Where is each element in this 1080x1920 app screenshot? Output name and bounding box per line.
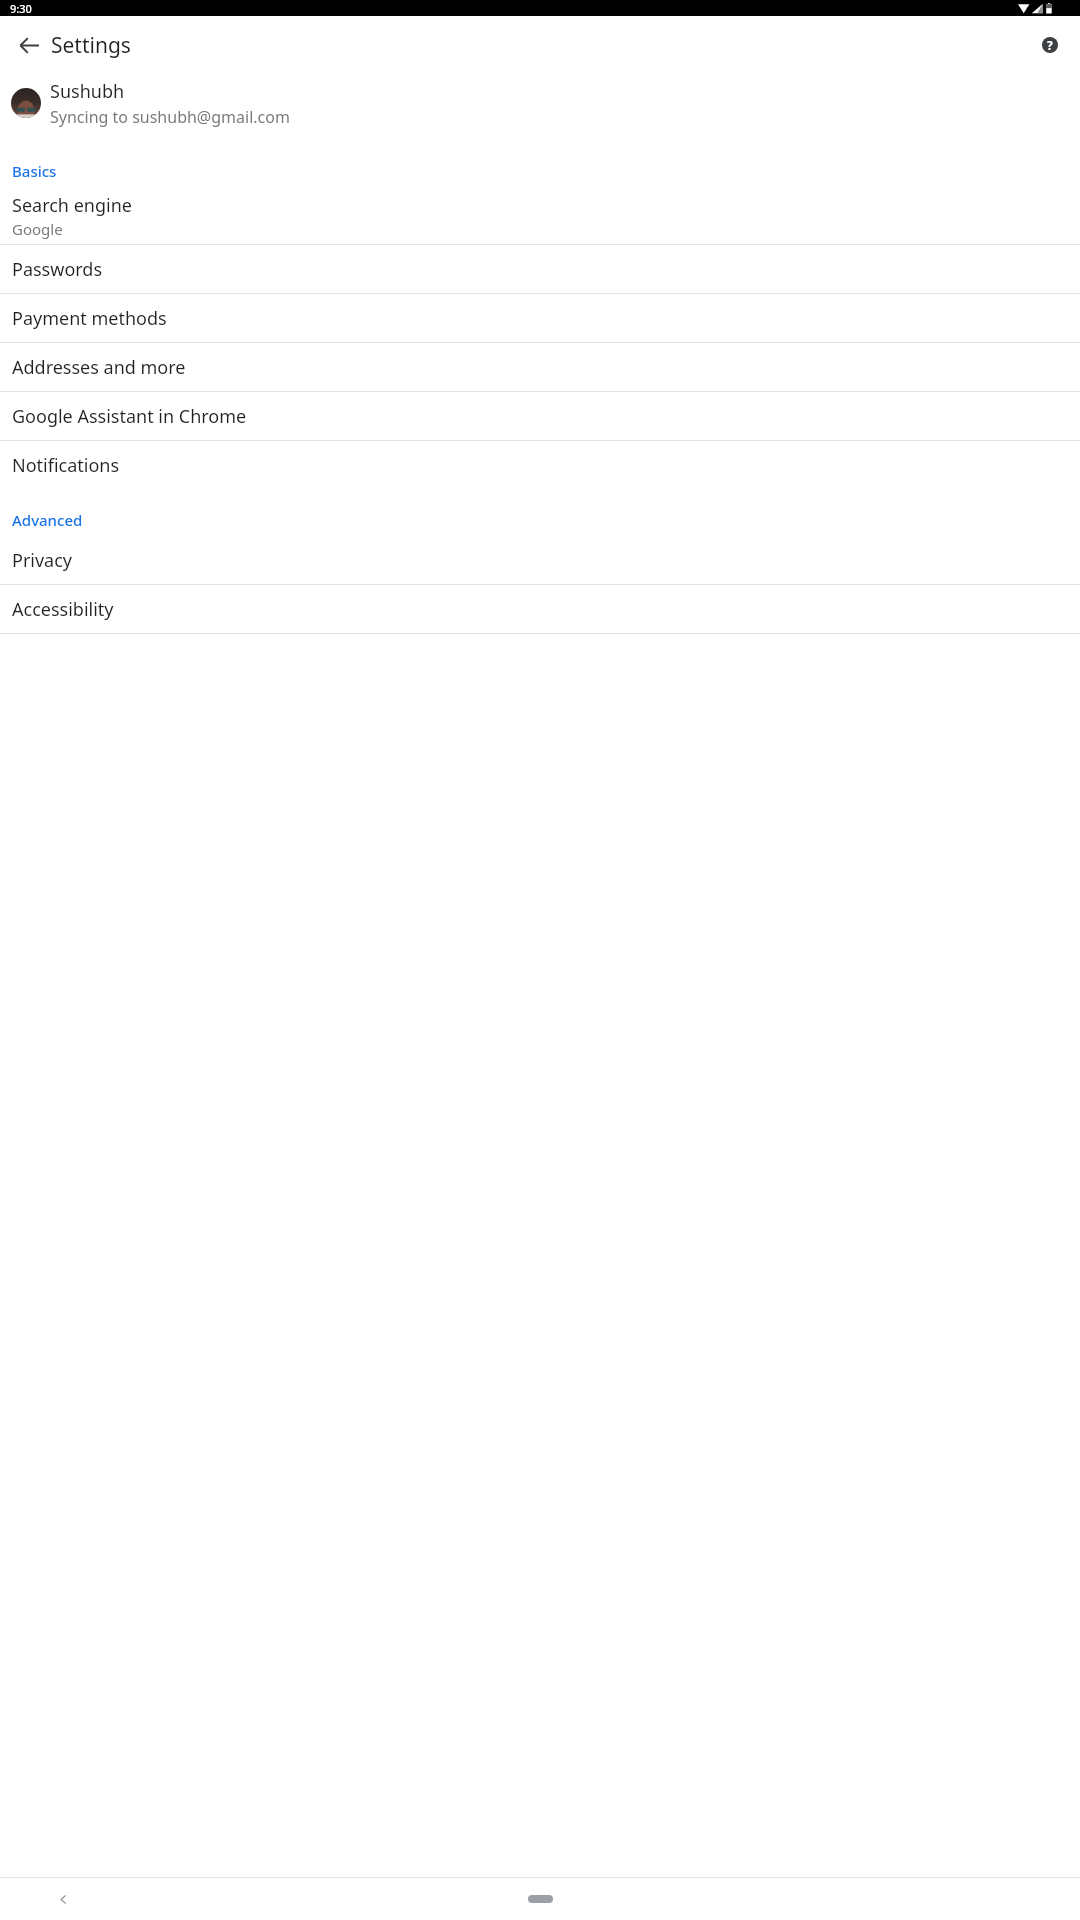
button[interactable]: Help [1029,24,1071,66]
button[interactable]: Sushubh [0,74,1080,132]
staticText: Advanced [12,510,83,530]
staticText: Google [12,219,63,239]
staticText: Payment methods [12,306,167,331]
button[interactable]: Payment methods [0,294,1080,342]
button[interactable]: Accessibility [0,585,1080,633]
button[interactable]: Notifications [0,441,1080,489]
staticText: Notifications [12,453,120,478]
staticText: Syncing to sushubh@gmail.com [50,106,290,128]
button[interactable]: Search engine [0,187,1080,244]
button[interactable]: Back [8,24,50,66]
staticText: Accessibility [12,597,114,622]
button[interactable]: Google Assistant in Chrome [0,392,1080,440]
staticText: Basics [12,161,57,181]
staticText: Addresses and more [12,355,186,380]
staticText: Privacy [12,548,73,573]
staticText: Google Assistant in Chrome [12,404,247,429]
button[interactable]: Home [528,1895,553,1903]
button[interactable]: Addresses and more [0,343,1080,391]
staticText: Search engine [12,193,132,218]
staticText: 9:30 [10,1,32,16]
button[interactable]: Back [45,1881,81,1917]
staticText: Sushubh [50,79,125,104]
button[interactable]: Passwords [0,245,1080,293]
button[interactable]: Privacy [0,536,1080,584]
staticText: Passwords [12,257,103,282]
staticText: Settings [51,31,131,60]
staticText: ? [1047,37,1053,53]
